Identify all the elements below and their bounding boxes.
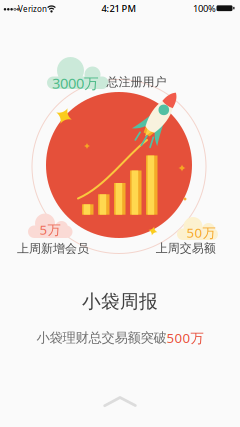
staticText: 3000万 — [52, 73, 99, 93]
staticText: 小袋周报 — [82, 290, 158, 313]
staticText: 4:21 PM — [101, 2, 136, 15]
staticText: 上周新增会员 — [17, 241, 89, 256]
staticText: 5万 — [39, 221, 60, 238]
staticText: Verizon — [18, 4, 47, 14]
staticText: 小袋理财总交易额突破 — [36, 330, 166, 346]
staticText: 50万 — [186, 224, 215, 241]
staticText: 100% — [193, 2, 216, 15]
staticText: 总注册用户 — [106, 75, 166, 89]
staticText: 上周交易额 — [156, 241, 216, 256]
staticText: 500万 — [166, 329, 203, 347]
button[interactable]: Continue — [100, 393, 140, 409]
